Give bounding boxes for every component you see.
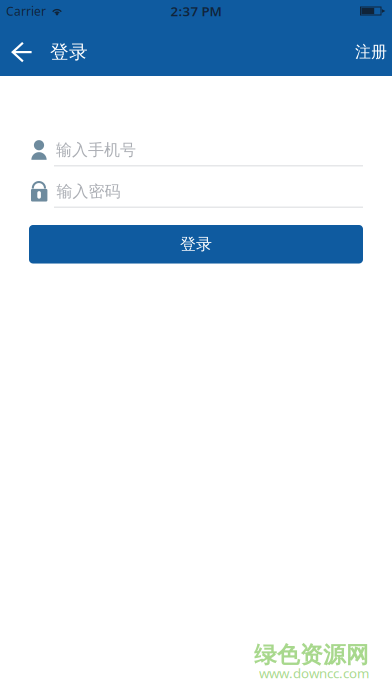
button[interactable]: 登录 (29, 225, 363, 263)
staticText: 登录 (50, 40, 88, 63)
staticText: 绿色资源网 (254, 641, 369, 669)
staticText: 输入手机号 (56, 140, 136, 160)
staticText: Carrier (6, 3, 46, 19)
staticText: www.downcc.com (259, 664, 369, 682)
staticText: 输入密码 (56, 182, 120, 201)
staticText: 注册 (355, 42, 387, 62)
button[interactable]: Back (0, 30, 44, 74)
staticText: 登录 (180, 234, 212, 254)
button[interactable]: 注册 (350, 30, 392, 74)
staticText: 2:37 PM (170, 2, 221, 20)
